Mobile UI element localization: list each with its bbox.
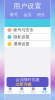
- button[interactable]: 通用设置: [4, 41, 50, 47]
- staticText: 我的: [42, 90, 48, 94]
- staticText: 立即升级: [15, 82, 31, 87]
- button[interactable]: 账号与安全: [4, 27, 50, 33]
- staticText: 账号: [10, 12, 18, 17]
- staticText: 积分: [37, 12, 45, 17]
- button[interactable]: 消息: [27, 87, 39, 94]
- button[interactable]: 会员限时优惠: [4, 77, 50, 87]
- staticText: 用户设置: [13, 2, 41, 10]
- staticText: 隐私设置: [13, 34, 29, 39]
- staticText: 发现: [19, 90, 25, 94]
- button[interactable]: 隐私设置: [4, 34, 50, 40]
- button[interactable]: Membership: [4, 19, 50, 27]
- staticText: 通用设置: [13, 41, 29, 46]
- staticText: 账号与安全: [13, 27, 33, 32]
- button[interactable]: 首页: [4, 87, 16, 94]
- staticText: 首页: [7, 90, 13, 94]
- staticText: 消息: [30, 90, 36, 94]
- button[interactable]: 我的: [39, 87, 50, 94]
- button[interactable]: 发现: [16, 87, 27, 94]
- staticText: 会员: [23, 12, 31, 17]
- staticText: 会员限时优惠: [15, 77, 39, 82]
